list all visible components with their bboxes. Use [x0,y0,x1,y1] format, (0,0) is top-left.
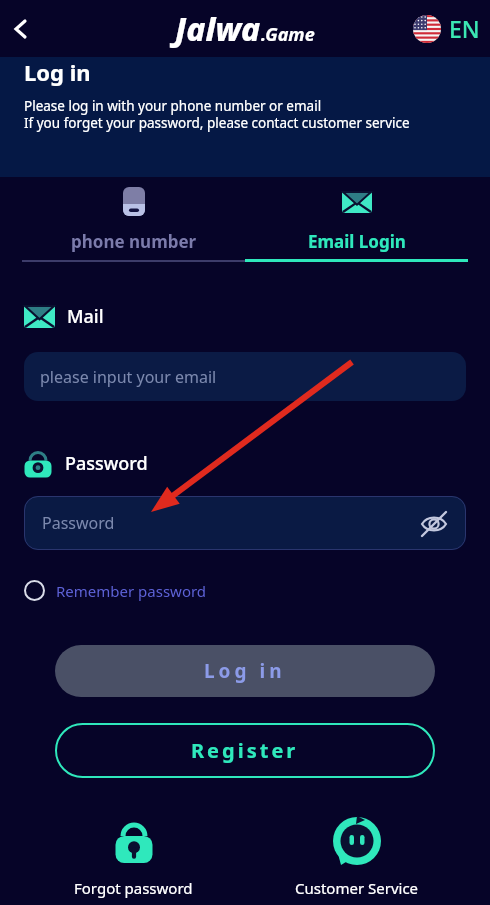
staticText: EN [449,13,480,44]
staticText: Forgot password [74,878,193,898]
staticText: Log in [24,57,91,87]
button[interactable]: please input your email [24,352,466,401]
staticText: Register [191,737,299,764]
button[interactable] [0,7,44,51]
staticText: Log in [204,658,286,684]
button[interactable]: Remember password [24,580,207,601]
staticText: Email Login [308,230,406,253]
button[interactable]: Customer Service [245,816,468,898]
staticText: please input your email [40,366,217,388]
staticText: Remember password [56,581,207,601]
button[interactable]: Password [24,496,466,550]
staticText: Customer Service [295,878,419,898]
staticText: Mail [67,304,104,329]
button[interactable]: phone number [22,187,245,253]
staticText: Password [42,512,115,534]
staticText: .Game [261,22,315,47]
button[interactable]: Email Login [245,187,468,253]
button[interactable]: Log in [55,645,435,697]
staticText: Password [65,451,148,476]
staticText: Please log in with your phone number or … [24,97,410,132]
button[interactable]: Register [55,723,435,778]
staticText: phone number [71,230,197,253]
button[interactable]: Forgot password [22,816,245,898]
staticText: Jalwa [175,7,261,51]
button[interactable]: EN [413,13,480,44]
